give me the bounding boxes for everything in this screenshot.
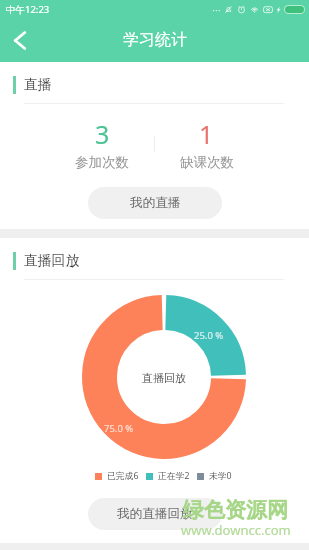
staticText: 中午12:23: [6, 3, 50, 16]
staticText: 未学0: [209, 470, 232, 482]
staticText: 学习统计: [123, 30, 187, 50]
button[interactable]: 我的直播回放: [88, 498, 222, 530]
staticText: 已完成6: [107, 470, 139, 482]
staticText: 直播: [24, 76, 52, 93]
staticText: 绿色资源网: [183, 497, 288, 523]
staticText: 缺课次数: [180, 154, 234, 171]
staticText: 参加次数: [75, 154, 129, 171]
staticText: 直播回放: [142, 371, 186, 385]
staticText: 3: [95, 117, 110, 151]
staticText: 我的直播回放: [117, 506, 193, 522]
staticText: 1: [199, 117, 214, 151]
staticText: www.downcc.com: [181, 521, 291, 539]
button[interactable]: Back: [0, 18, 40, 62]
staticText: 正在学2: [158, 470, 190, 482]
button[interactable]: 我的直播: [88, 187, 222, 219]
staticText: 直播回放: [24, 252, 80, 269]
staticText: 25.0 %: [194, 329, 224, 342]
staticText: 75.0 %: [104, 422, 134, 435]
staticText: 我的直播: [130, 195, 181, 211]
